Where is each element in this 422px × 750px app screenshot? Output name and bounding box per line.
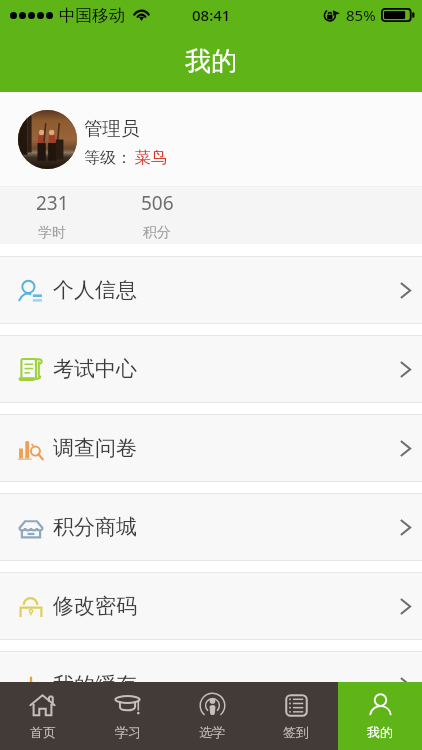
staticText: 首页	[30, 724, 56, 740]
staticText: 506	[141, 190, 174, 216]
staticText: 选学	[199, 724, 225, 740]
button[interactable]: 修改密码	[0, 573, 422, 639]
other: 修改密码	[18, 594, 44, 620]
staticText: 231	[36, 190, 69, 216]
staticText: 85%	[346, 5, 376, 25]
button[interactable]: 我的缓存	[0, 652, 422, 718]
other: 首页	[29, 692, 56, 719]
staticText: 等级：	[84, 148, 132, 168]
staticText: 个人信息	[53, 277, 137, 303]
button[interactable]: 我的	[338, 682, 422, 750]
staticText: 学习	[115, 724, 141, 740]
staticText: 积分商城	[53, 514, 137, 540]
staticText: 中国移动	[59, 5, 125, 26]
staticText: 我的	[185, 45, 237, 78]
other: 考试中心	[18, 357, 44, 383]
staticText: 学时	[38, 224, 66, 242]
button[interactable]: 个人信息	[0, 257, 422, 323]
staticText: 修改密码	[53, 593, 137, 619]
other: 我的缓存	[18, 673, 44, 699]
staticText: 积分	[143, 224, 171, 242]
staticText: 菜鸟	[135, 148, 167, 168]
staticText: 我的缓存	[53, 672, 137, 698]
button[interactable]: 选学	[170, 682, 254, 750]
staticText: 08:41	[192, 5, 231, 25]
staticText: 我的	[367, 724, 393, 740]
button[interactable]: 首页	[0, 682, 85, 750]
staticText: 调查问卷	[53, 435, 137, 461]
other: 调查问卷	[18, 436, 44, 462]
button[interactable]: 学习	[85, 682, 170, 750]
other: 选学	[199, 692, 226, 719]
other: 签到	[283, 692, 310, 719]
button[interactable]: 调查问卷	[0, 415, 422, 481]
other: 我的	[367, 692, 394, 719]
button[interactable]: 考试中心	[0, 336, 422, 402]
other: 个人信息	[18, 278, 44, 304]
button[interactable]: 积分商城	[0, 494, 422, 560]
button[interactable]: 签到	[254, 682, 338, 750]
staticText: 考试中心	[53, 356, 137, 382]
other: 学习	[114, 692, 141, 719]
staticText: 管理员	[84, 117, 140, 140]
staticText: 签到	[283, 724, 309, 740]
other: 积分商城	[18, 515, 44, 541]
